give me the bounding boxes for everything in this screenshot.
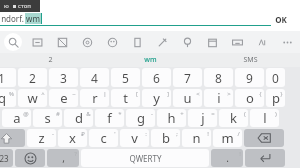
button[interactable]: OK	[275, 14, 287, 25]
staticText: 3	[60, 70, 67, 86]
staticText: j	[201, 109, 205, 127]
button[interactable]: 0	[266, 68, 285, 87]
button[interactable]: a	[2, 109, 31, 127]
button[interactable]: .	[211, 149, 243, 167]
button[interactable]: 3	[49, 68, 78, 87]
staticText: q	[0, 89, 6, 107]
button[interactable]: y	[142, 89, 171, 107]
button[interactable]: l	[250, 109, 279, 127]
staticText: +	[180, 110, 184, 118]
staticText: z	[38, 129, 45, 147]
staticText: f	[107, 109, 112, 127]
staticText: <	[196, 90, 200, 98]
staticText: 2	[48, 55, 53, 65]
button[interactable]: 2	[18, 68, 47, 87]
staticText: @	[23, 110, 29, 118]
button[interactable]: e	[49, 89, 78, 107]
button[interactable]: z	[27, 129, 56, 147]
staticText: 6	[153, 70, 160, 86]
button[interactable]: Clipboard	[25, 31, 50, 53]
button[interactable]: Settings	[125, 31, 150, 53]
button[interactable]: v	[120, 129, 149, 147]
button[interactable]: g	[126, 109, 155, 127]
button[interactable]: m	[213, 129, 242, 147]
button[interactable]: u	[173, 89, 202, 107]
button[interactable]: k	[219, 109, 248, 127]
staticText: /	[237, 130, 240, 138]
staticText: ^	[41, 90, 45, 98]
button[interactable]: 4	[80, 68, 109, 87]
staticText: s	[44, 109, 51, 127]
button[interactable]: ,	[47, 149, 79, 167]
button[interactable]: SMS	[200, 53, 300, 67]
staticText: #	[56, 110, 60, 118]
staticText: 0	[272, 70, 279, 86]
staticText: t	[123, 89, 128, 107]
staticText: w	[27, 89, 38, 107]
button[interactable]: Backspace	[244, 129, 284, 147]
button[interactable]: o	[235, 89, 264, 107]
button[interactable]: Location	[175, 31, 200, 53]
button[interactable]: x	[58, 129, 87, 147]
staticText: p	[272, 89, 280, 107]
staticText: -	[151, 110, 153, 118]
button[interactable]: c	[89, 129, 118, 147]
button[interactable]: QWERTY	[81, 149, 209, 167]
staticText: ?123	[0, 153, 9, 164]
staticText: k	[230, 109, 237, 127]
button[interactable]: d	[64, 109, 93, 127]
button[interactable]: 8	[204, 68, 233, 87]
button[interactable]: Enter	[245, 149, 285, 167]
staticText: wm	[26, 13, 40, 24]
staticText: d	[75, 109, 83, 127]
button[interactable]: Text size	[250, 31, 275, 53]
staticText: :	[145, 130, 147, 138]
button[interactable]: w	[18, 89, 47, 107]
button[interactable]: p	[266, 89, 285, 107]
staticText: o	[246, 89, 254, 107]
button[interactable]: More	[275, 31, 300, 53]
button[interactable]: b	[151, 129, 180, 147]
staticText: }	[280, 90, 283, 98]
staticText: y	[153, 89, 160, 107]
button[interactable]: q	[0, 89, 16, 107]
staticText: ю	[4, 2, 9, 10]
button[interactable]: Translate	[50, 31, 75, 53]
button[interactable]: h	[157, 109, 186, 127]
staticText: ?	[74, 150, 77, 158]
button[interactable]: 5	[111, 68, 140, 87]
button[interactable]: f	[95, 109, 124, 127]
button[interactable]: i	[204, 89, 233, 107]
button[interactable]: 1	[0, 68, 16, 87]
button[interactable]: 2	[0, 53, 100, 67]
button[interactable]: r	[80, 89, 109, 107]
staticText: 2	[29, 70, 36, 86]
button[interactable]: Search	[0, 31, 25, 53]
button[interactable]: 6	[142, 68, 171, 87]
staticText: {	[259, 90, 262, 98]
staticText: SMS	[243, 55, 258, 65]
button[interactable]: j	[188, 109, 217, 127]
staticText: i	[217, 89, 221, 107]
staticText: 1	[0, 70, 5, 86]
button[interactable]: wm	[100, 53, 200, 67]
button[interactable]: Handwriting	[150, 31, 175, 53]
button[interactable]: ?123	[0, 149, 13, 167]
button[interactable]: Calendar	[200, 31, 225, 53]
button[interactable]: Emoji	[15, 149, 45, 167]
button[interactable]: Sticker	[75, 31, 100, 53]
staticText: '	[114, 130, 116, 138]
button[interactable]: ю	[0, 0, 40, 12]
button[interactable]: 7	[173, 68, 202, 87]
staticText: v	[131, 129, 138, 147]
staticText: =	[211, 110, 215, 118]
staticText: ₽	[81, 130, 85, 138]
button[interactable]: t	[111, 89, 140, 107]
button[interactable]: Keyboard mode	[225, 31, 250, 53]
staticText: %	[9, 90, 14, 98]
button[interactable]: n	[182, 129, 211, 147]
button[interactable]: GIF	[100, 31, 125, 53]
button[interactable]: 9	[235, 68, 264, 87]
button[interactable]: Shift	[0, 129, 25, 147]
button[interactable]: s	[33, 109, 62, 127]
